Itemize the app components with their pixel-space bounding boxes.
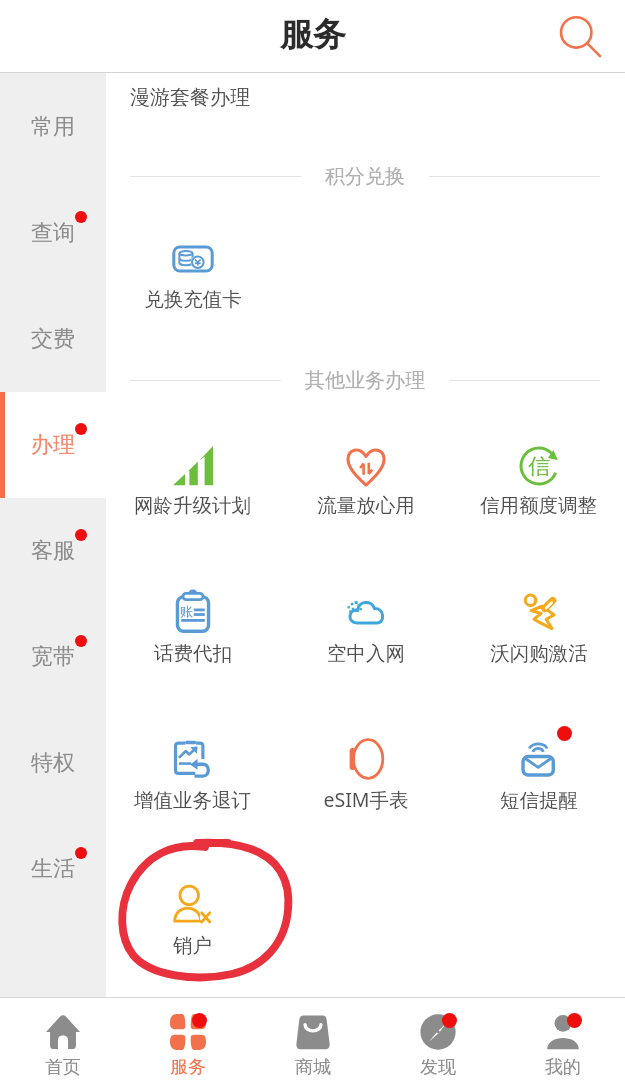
button[interactable]: 常用 — [0, 74, 106, 180]
button[interactable]: eSIM手表 — [279, 729, 452, 813]
staticText: 首页 — [45, 1056, 81, 1079]
staticText: 网龄升级计划 — [134, 493, 251, 518]
staticText: 增值业务退订 — [134, 788, 251, 813]
button[interactable]: 兑换充值卡 — [106, 229, 279, 312]
staticText: 查询 — [31, 219, 75, 247]
button[interactable]: 服务 — [125, 998, 250, 1080]
button[interactable]: 办理 — [0, 392, 106, 498]
staticText: 信用额度调整 — [480, 493, 597, 518]
button[interactable]: 账 — [106, 582, 279, 666]
button[interactable]: 流量放心用 — [279, 436, 452, 518]
staticText: 其他业务办理 — [305, 368, 425, 393]
button[interactable]: 空中入网 — [279, 582, 452, 666]
staticText: 信 — [528, 453, 550, 481]
button[interactable]: 增值业务退订 — [106, 729, 279, 813]
staticText: 办理 — [31, 431, 75, 459]
staticText: 商城 — [295, 1056, 331, 1079]
button[interactable]: 销户 — [106, 876, 279, 958]
button[interactable]: 我的 — [500, 998, 625, 1080]
button[interactable]: 漫游套餐办理 — [130, 84, 250, 110]
button[interactable]: 首页 — [0, 998, 125, 1080]
staticText: 我的 — [545, 1056, 581, 1079]
staticText: 话费代扣 — [154, 641, 232, 666]
staticText: 流量放心用 — [317, 493, 415, 518]
staticText: 兑换充值卡 — [144, 287, 242, 312]
staticText: 客服 — [31, 537, 75, 565]
button[interactable]: 信 — [452, 436, 625, 518]
staticText: 服务 — [280, 14, 346, 56]
staticText: 销户 — [173, 933, 212, 958]
staticText: 交费 — [31, 325, 75, 353]
staticText: 宽带 — [31, 643, 75, 671]
staticText: 沃闪购激活 — [490, 641, 588, 666]
button[interactable]: 短信提醒 — [452, 729, 625, 813]
button[interactable]: 特权 — [0, 710, 106, 816]
button[interactable]: 沃闪购激活 — [452, 582, 625, 666]
staticText: 空中入网 — [327, 641, 405, 666]
button[interactable]: 商城 — [250, 998, 375, 1080]
staticText: 特权 — [31, 749, 75, 777]
button[interactable]: 网龄升级计划 — [106, 436, 279, 518]
button[interactable]: 宽带 — [0, 604, 106, 710]
button[interactable]: 交费 — [0, 286, 106, 392]
staticText: 短信提醒 — [500, 788, 578, 813]
staticText: 服务 — [170, 1056, 206, 1079]
staticText: 漫游套餐办理 — [130, 85, 250, 110]
staticText: eSIM手表 — [323, 786, 409, 813]
staticText: 积分兑换 — [325, 164, 405, 189]
button[interactable]: 查询 — [0, 180, 106, 286]
button[interactable]: Search — [553, 11, 605, 63]
button[interactable]: 发现 — [375, 998, 500, 1080]
staticText: 发现 — [420, 1056, 456, 1079]
button[interactable]: 客服 — [0, 498, 106, 604]
staticText: 生活 — [31, 855, 75, 883]
staticText: 账 — [180, 603, 193, 619]
staticText: 常用 — [31, 113, 75, 141]
button[interactable]: 生活 — [0, 816, 106, 922]
